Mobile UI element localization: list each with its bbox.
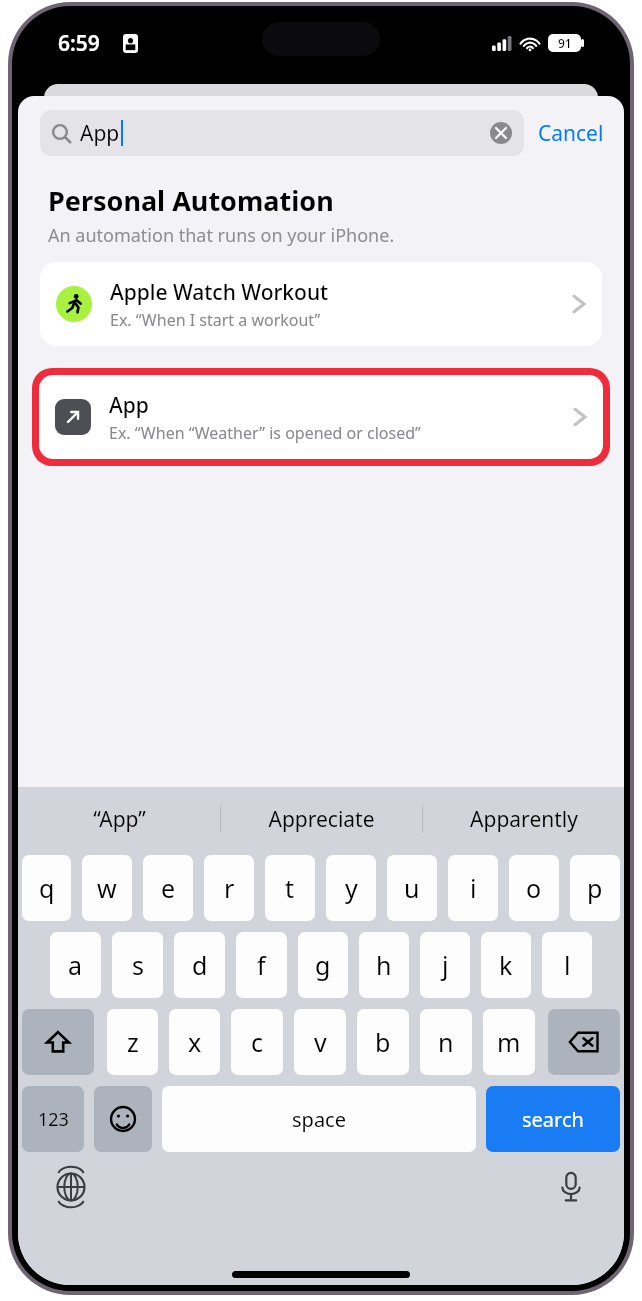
staticText: search — [522, 1106, 584, 1133]
staticText: App — [80, 119, 120, 148]
staticText: 91 — [558, 35, 572, 51]
button[interactable]: Apparently — [423, 787, 624, 851]
button[interactable]: b — [357, 1009, 409, 1075]
staticText: b — [375, 1025, 391, 1059]
button[interactable]: Backspace — [548, 1009, 620, 1075]
button[interactable]: c — [231, 1009, 283, 1075]
staticText: t — [285, 871, 295, 905]
staticText: Ex. “When “Weather” is opened or closed” — [109, 422, 421, 444]
staticText: l — [564, 948, 571, 982]
button[interactable]: d — [174, 932, 225, 998]
button[interactable]: q — [22, 855, 71, 921]
button[interactable]: r — [204, 855, 254, 921]
staticText: x — [188, 1025, 202, 1059]
staticText: e — [161, 871, 176, 905]
button[interactable]: w — [82, 855, 132, 921]
staticText: y — [345, 871, 358, 905]
button[interactable]: y — [326, 855, 376, 921]
button[interactable]: Dictate — [552, 1168, 590, 1206]
button[interactable]: j — [420, 932, 470, 998]
staticText: d — [192, 948, 208, 982]
staticText: g — [315, 948, 331, 982]
staticText: c — [251, 1025, 264, 1059]
button[interactable]: p — [570, 855, 620, 921]
staticText: a — [68, 948, 83, 982]
staticText: w — [97, 871, 117, 905]
button[interactable]: 123 — [22, 1086, 84, 1152]
button[interactable]: Clear text — [490, 122, 512, 144]
button[interactable]: m — [483, 1009, 535, 1075]
staticText: An automation that runs on your iPhone. — [48, 223, 395, 248]
staticText: m — [497, 1025, 521, 1059]
button[interactable]: g — [298, 932, 348, 998]
staticText: h — [376, 948, 392, 982]
button[interactable]: f — [236, 932, 287, 998]
staticText: u — [404, 871, 420, 905]
staticText: Appreciate — [268, 805, 375, 834]
button[interactable]: Change keyboard — [52, 1168, 90, 1206]
staticText: s — [132, 948, 144, 982]
staticText: Apparently — [470, 805, 578, 834]
staticText: j — [442, 948, 449, 982]
staticText: n — [438, 1025, 454, 1059]
button[interactable]: Emoji — [94, 1086, 152, 1152]
button[interactable]: k — [481, 932, 531, 998]
button[interactable]: Shift — [22, 1009, 94, 1075]
button[interactable]: Cancel — [536, 113, 606, 154]
button[interactable]: Apple Watch Workout — [40, 262, 602, 346]
staticText: v — [314, 1025, 327, 1059]
button[interactable]: v — [294, 1009, 346, 1075]
button[interactable]: x — [169, 1009, 220, 1075]
staticText: r — [224, 871, 235, 905]
button[interactable]: o — [509, 855, 559, 921]
staticText: i — [470, 871, 477, 905]
staticText: k — [499, 948, 513, 982]
staticText: Cancel — [538, 119, 604, 148]
button[interactable]: h — [359, 932, 409, 998]
button[interactable]: t — [265, 855, 315, 921]
button[interactable]: a — [50, 932, 101, 998]
staticText: 123 — [38, 1107, 69, 1132]
staticText: space — [292, 1106, 346, 1133]
staticText: p — [587, 871, 603, 905]
button[interactable]: “App” — [18, 787, 220, 851]
button[interactable]: n — [420, 1009, 472, 1075]
staticText: o — [526, 871, 542, 905]
button[interactable]: e — [143, 855, 193, 921]
staticText: App — [109, 391, 149, 420]
button[interactable]: space — [162, 1086, 476, 1152]
button[interactable]: l — [542, 932, 592, 998]
staticText: Apple Watch Workout — [110, 278, 329, 307]
staticText: Ex. “When I start a workout” — [110, 309, 321, 331]
staticText: q — [39, 871, 55, 905]
staticText: “App” — [93, 805, 146, 834]
button[interactable]: App — [39, 375, 603, 459]
button[interactable]: z — [107, 1009, 158, 1075]
button[interactable]: i — [448, 855, 498, 921]
staticText: Personal Automation — [48, 182, 334, 219]
staticText: f — [257, 948, 266, 982]
button[interactable]: s — [112, 932, 163, 998]
button[interactable]: u — [387, 855, 437, 921]
button[interactable]: search — [486, 1086, 620, 1152]
button[interactable]: Appreciate — [221, 787, 422, 851]
staticText: 6:59 — [58, 29, 100, 58]
button[interactable]: App — [40, 110, 524, 156]
staticText: z — [127, 1025, 139, 1059]
